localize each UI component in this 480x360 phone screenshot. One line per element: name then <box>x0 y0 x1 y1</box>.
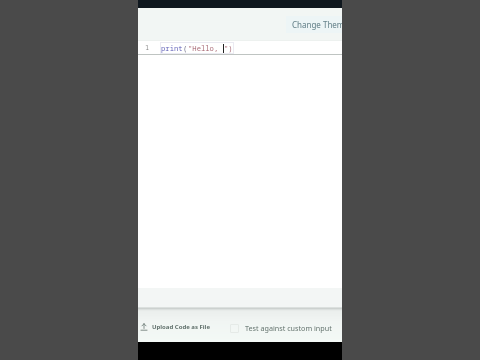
staticText: 1 <box>145 43 150 53</box>
staticText: ( <box>183 43 188 53</box>
staticText: ") <box>224 43 233 53</box>
staticText: "Hello, <box>188 43 223 53</box>
staticText: print <box>161 43 183 53</box>
other: Upload Code as File <box>140 323 148 331</box>
button[interactable]: Test against custom input <box>228 319 334 337</box>
button[interactable]: Upload Code as File <box>138 319 214 335</box>
staticText: Change Theme <box>292 19 342 30</box>
staticText: Upload Code as File <box>152 323 210 331</box>
staticText: Test against custom input <box>245 323 332 333</box>
button[interactable]: Change Theme <box>286 16 342 33</box>
